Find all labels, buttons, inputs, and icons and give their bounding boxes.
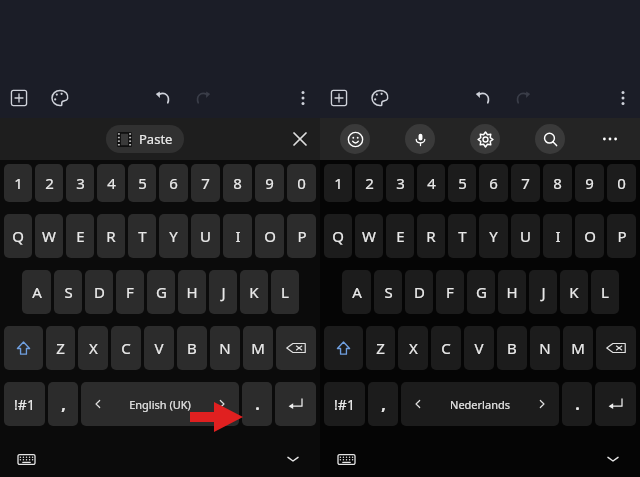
button[interactable]: Emoji (340, 124, 370, 154)
button[interactable]: O (255, 214, 284, 258)
button[interactable]: R (417, 214, 445, 258)
button[interactable]: Backspace (276, 326, 316, 370)
button[interactable]: 4 (97, 164, 125, 202)
button[interactable]: Paste (106, 125, 184, 153)
button[interactable]: , (368, 382, 398, 426)
button[interactable]: 7 (511, 164, 540, 202)
button[interactable]: M (243, 326, 273, 370)
button[interactable]: Add (10, 89, 28, 107)
button[interactable]: T (448, 214, 476, 258)
button[interactable]: D (85, 270, 113, 314)
button[interactable]: 3 (66, 164, 94, 202)
button[interactable]: Add (330, 89, 348, 107)
button[interactable]: 8 (543, 164, 572, 202)
button[interactable]: More options (616, 88, 630, 108)
button[interactable]: W (35, 214, 63, 258)
button[interactable]: !#1 (4, 382, 45, 426)
button[interactable]: Undo (473, 88, 493, 108)
button[interactable]: 5 (448, 164, 476, 202)
button[interactable]: Hide keyboard (604, 452, 622, 466)
button[interactable]: Y (479, 214, 508, 258)
button[interactable]: P (607, 214, 636, 258)
button[interactable]: 9 (255, 164, 284, 202)
button[interactable]: C (431, 326, 461, 370)
button[interactable]: H (498, 270, 526, 314)
button[interactable]: !#1 (324, 382, 365, 426)
button[interactable]: Search (535, 124, 565, 154)
button[interactable]: 8 (223, 164, 252, 202)
button[interactable]: J (209, 270, 237, 314)
button[interactable]: I (223, 214, 252, 258)
button[interactable]: B (177, 326, 207, 370)
button[interactable]: N (210, 326, 240, 370)
button[interactable]: 6 (479, 164, 508, 202)
button[interactable]: X (398, 326, 428, 370)
button[interactable]: Shift (4, 326, 43, 370)
button[interactable]: Voice input (405, 124, 435, 154)
button[interactable]: K (560, 270, 588, 314)
button[interactable]: K (240, 270, 268, 314)
button[interactable]: Z (46, 326, 75, 370)
button[interactable]: . (562, 382, 592, 426)
button[interactable]: 4 (417, 164, 445, 202)
button[interactable]: G (467, 270, 495, 314)
button[interactable]: O (575, 214, 604, 258)
button[interactable]: Redo (513, 88, 533, 108)
button[interactable]: U (191, 214, 220, 258)
button[interactable]: X (78, 326, 108, 370)
button[interactable]: E (66, 214, 94, 258)
button[interactable]: R (97, 214, 125, 258)
button[interactable]: L (591, 270, 619, 314)
button[interactable]: 0 (607, 164, 636, 202)
button[interactable]: U (511, 214, 540, 258)
button[interactable]: A (342, 270, 371, 314)
button[interactable]: Keyboard (338, 453, 355, 466)
button[interactable]: S (54, 270, 82, 314)
button[interactable]: N (530, 326, 560, 370)
button[interactable]: G (147, 270, 175, 314)
button[interactable]: L (271, 270, 299, 314)
button[interactable]: Enter (275, 382, 316, 426)
button[interactable]: Theme (50, 88, 70, 108)
button[interactable]: More options (296, 88, 310, 108)
button[interactable]: M (563, 326, 593, 370)
button[interactable]: F (116, 270, 144, 314)
button[interactable]: 1 (324, 164, 352, 202)
button[interactable]: Shift (324, 326, 363, 370)
button[interactable]: Enter (595, 382, 636, 426)
button[interactable]: Y (159, 214, 188, 258)
button[interactable]: P (287, 214, 316, 258)
button[interactable]: I (543, 214, 572, 258)
button[interactable]: 2 (355, 164, 383, 202)
button[interactable]: Z (366, 326, 395, 370)
button[interactable]: Q (4, 214, 32, 258)
button[interactable]: 6 (159, 164, 188, 202)
button[interactable]: C (111, 326, 141, 370)
button[interactable]: 0 (287, 164, 316, 202)
button[interactable]: Backspace (596, 326, 636, 370)
button[interactable]: Keyboard (18, 453, 35, 466)
button[interactable]: 3 (386, 164, 414, 202)
button[interactable]: V (464, 326, 494, 370)
button[interactable]: W (355, 214, 383, 258)
button[interactable]: Hide keyboard (284, 452, 302, 466)
button[interactable]: D (405, 270, 433, 314)
button[interactable]: . (242, 382, 272, 426)
button[interactable]: Settings (470, 124, 500, 154)
button[interactable]: S (374, 270, 402, 314)
button[interactable]: Theme (370, 88, 390, 108)
button[interactable]: E (386, 214, 414, 258)
button[interactable]: 5 (128, 164, 156, 202)
button[interactable]: J (529, 270, 557, 314)
button[interactable]: Close (290, 129, 310, 149)
button[interactable]: Nederlands (401, 382, 559, 426)
button[interactable]: V (144, 326, 174, 370)
button[interactable]: A (22, 270, 51, 314)
button[interactable]: Redo (193, 88, 213, 108)
button[interactable]: 9 (575, 164, 604, 202)
button[interactable]: T (128, 214, 156, 258)
button[interactable]: 7 (191, 164, 220, 202)
button[interactable]: English (UK) (81, 382, 239, 426)
button[interactable]: , (48, 382, 78, 426)
button[interactable]: B (497, 326, 527, 370)
